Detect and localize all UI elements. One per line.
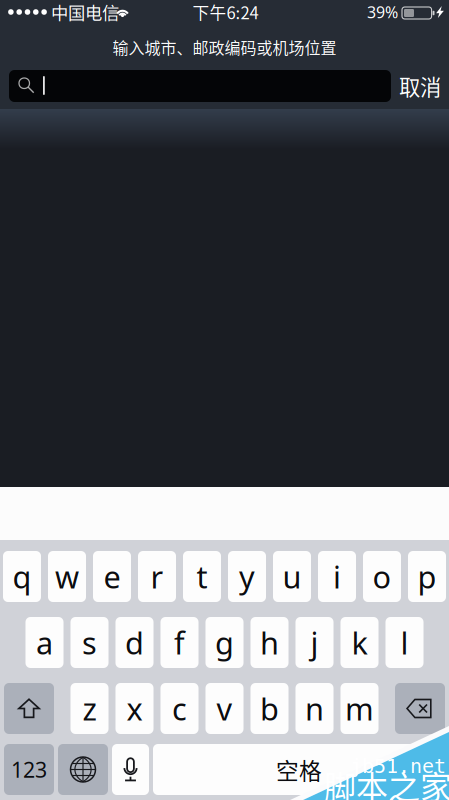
button[interactable]: j bbox=[295, 617, 333, 668]
staticText: f bbox=[174, 622, 185, 663]
button[interactable]: Dictation bbox=[112, 744, 149, 795]
staticText: e bbox=[103, 556, 120, 597]
button[interactable]: n bbox=[295, 683, 333, 734]
button[interactable]: e bbox=[93, 551, 131, 602]
staticText: g bbox=[215, 622, 234, 663]
staticText: a bbox=[36, 622, 53, 663]
staticText: z bbox=[82, 688, 96, 729]
button[interactable]: w bbox=[48, 551, 86, 602]
staticText: l bbox=[400, 622, 408, 663]
button[interactable]: f bbox=[160, 617, 198, 668]
button[interactable]: y bbox=[228, 551, 266, 602]
staticText: p bbox=[417, 556, 436, 597]
staticText: t bbox=[196, 556, 207, 597]
staticText: m bbox=[345, 688, 374, 729]
staticText: o bbox=[372, 556, 391, 597]
button[interactable]: Switch keyboard bbox=[58, 744, 108, 795]
staticText: d bbox=[125, 622, 144, 663]
staticText: r bbox=[150, 556, 163, 597]
button[interactable]: p bbox=[408, 551, 446, 602]
button[interactable]: Numbers bbox=[4, 744, 54, 795]
staticText: 下午6:24 bbox=[192, 0, 258, 24]
staticText: n bbox=[305, 688, 324, 729]
staticText: w bbox=[55, 556, 79, 597]
button[interactable]: t bbox=[183, 551, 221, 602]
staticText: h bbox=[260, 622, 279, 663]
staticText: u bbox=[282, 556, 301, 597]
staticText: 中国电信 bbox=[51, 0, 119, 25]
button[interactable]: q bbox=[3, 551, 41, 602]
staticText: 脚本之家 bbox=[324, 762, 449, 800]
button[interactable]: b bbox=[250, 683, 288, 734]
button[interactable]: u bbox=[273, 551, 311, 602]
button[interactable]: 取消 bbox=[396, 70, 444, 102]
staticText: b bbox=[260, 688, 279, 729]
button[interactable]: m bbox=[340, 683, 378, 734]
button[interactable]: l bbox=[385, 617, 423, 668]
staticText: j bbox=[310, 622, 318, 663]
button[interactable]: Shift bbox=[4, 683, 54, 734]
button[interactable]: h bbox=[250, 617, 288, 668]
button[interactable]: c bbox=[160, 683, 198, 734]
staticText: i bbox=[333, 556, 341, 597]
staticText: 取消 bbox=[399, 71, 441, 101]
staticText: x bbox=[126, 688, 142, 729]
staticText: s bbox=[82, 622, 97, 663]
button[interactable]: a bbox=[25, 617, 63, 668]
button[interactable]: i bbox=[318, 551, 356, 602]
button[interactable]: k bbox=[340, 617, 378, 668]
staticText: c bbox=[172, 688, 187, 729]
button[interactable]: 空格 bbox=[153, 744, 445, 795]
staticText: jb51.net bbox=[350, 754, 446, 778]
button[interactable]: v bbox=[205, 683, 243, 734]
staticText: 空格 bbox=[276, 753, 322, 786]
staticText: 123 bbox=[11, 755, 47, 784]
button[interactable]: s bbox=[70, 617, 108, 668]
staticText: q bbox=[12, 556, 31, 597]
button[interactable]: g bbox=[205, 617, 243, 668]
staticText: y bbox=[239, 556, 255, 597]
button[interactable]: o bbox=[363, 551, 401, 602]
staticText: 39% bbox=[367, 1, 398, 23]
staticText: v bbox=[216, 688, 232, 729]
button[interactable]: Delete bbox=[395, 683, 445, 734]
button[interactable]: d bbox=[115, 617, 153, 668]
button[interactable]: x bbox=[115, 683, 153, 734]
staticText: k bbox=[351, 622, 367, 663]
staticText: 输入城市、邮政编码或机场位置 bbox=[112, 35, 336, 59]
button[interactable]: r bbox=[138, 551, 176, 602]
button[interactable]: z bbox=[70, 683, 108, 734]
